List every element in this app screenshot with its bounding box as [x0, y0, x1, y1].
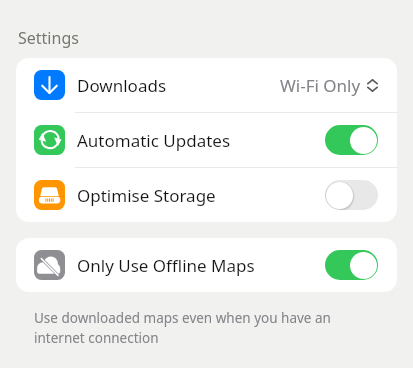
other: Downloads	[34, 70, 65, 100]
other: Choose option	[367, 79, 378, 92]
button[interactable]: Toggle on	[325, 125, 378, 155]
other: Only Use Offline Maps	[34, 250, 65, 280]
staticText: Settings	[18, 27, 79, 49]
staticText: Wi-Fi Only	[280, 74, 361, 97]
other: Automatic Updates	[34, 125, 65, 155]
button[interactable]: Automatic Updates	[16, 113, 397, 167]
staticText: Automatic Updates	[77, 129, 231, 152]
staticText: Use downloaded maps even when you have a…	[34, 309, 331, 347]
staticText: Downloads	[77, 74, 167, 97]
staticText: Optimise Storage	[77, 184, 216, 207]
button[interactable]: Downloads	[16, 58, 397, 112]
button[interactable]: Toggle on	[325, 250, 378, 280]
button[interactable]: Optimise Storage	[16, 168, 397, 222]
staticText: Only Use Offline Maps	[77, 254, 255, 277]
other: Optimise Storage	[34, 180, 65, 210]
button[interactable]: Toggle off	[325, 180, 378, 210]
button[interactable]: Only Use Offline Maps	[16, 238, 397, 292]
